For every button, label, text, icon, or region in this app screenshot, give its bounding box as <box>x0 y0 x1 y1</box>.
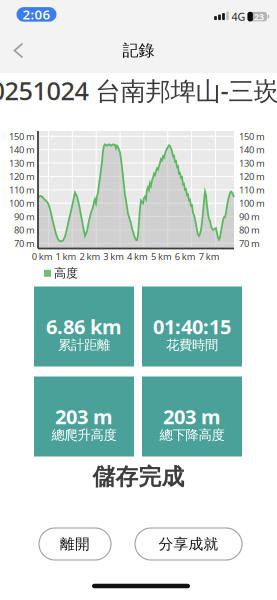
staticText: 80 m <box>239 224 260 236</box>
staticText: 7 km <box>199 250 220 263</box>
staticText: 2 km <box>79 250 100 263</box>
staticText: 110 m <box>239 184 265 196</box>
staticText: 總爬升高度 <box>51 427 116 443</box>
staticText: 120 m <box>239 170 265 183</box>
staticText: 120 m <box>9 170 35 183</box>
staticText: 6 km <box>175 250 196 263</box>
staticText: 20251024 台南邦埤山-三崁店山 <box>0 74 277 107</box>
staticText: 6.86 km <box>46 313 122 340</box>
staticText: 130 m <box>239 157 265 169</box>
staticText: 140 m <box>239 143 265 156</box>
staticText: 記錄 <box>122 41 154 60</box>
staticText: 150 m <box>9 130 35 142</box>
button[interactable]: Back <box>3 34 35 66</box>
staticText: 高度 <box>54 266 78 281</box>
staticText: 70 m <box>239 237 260 249</box>
staticText: 23 <box>254 11 264 23</box>
staticText: 離開 <box>60 535 90 553</box>
staticText: 3 km <box>103 250 124 263</box>
staticText: 90 m <box>239 210 260 223</box>
staticText: 100 m <box>9 197 35 209</box>
staticText: 90 m <box>14 210 35 223</box>
staticText: 2:06 <box>22 5 50 23</box>
button[interactable]: 分享成就 <box>135 528 242 560</box>
staticText: 4 km <box>127 250 148 263</box>
staticText: 5 km <box>151 250 172 263</box>
staticText: 80 m <box>14 224 35 236</box>
staticText: 0 km <box>32 250 53 263</box>
staticText: 花費時間 <box>166 337 218 353</box>
staticText: 總下降高度 <box>159 427 224 443</box>
staticText: 1 km <box>56 250 77 263</box>
staticText: 4G <box>231 9 245 24</box>
staticText: 分享成就 <box>158 535 218 553</box>
staticText: 70 m <box>14 237 35 249</box>
staticText: 110 m <box>9 184 35 196</box>
staticText: 01:40:15 <box>153 313 231 340</box>
staticText: 203 m <box>163 403 221 430</box>
button[interactable]: 離開 <box>39 528 111 560</box>
staticText: 150 m <box>239 130 265 142</box>
staticText: 130 m <box>9 157 35 169</box>
staticText: 203 m <box>55 403 113 430</box>
staticText: 140 m <box>9 143 35 156</box>
staticText: 儲存完成 <box>92 463 184 491</box>
staticText: 累計距離 <box>58 337 110 353</box>
staticText: 100 m <box>239 197 265 209</box>
